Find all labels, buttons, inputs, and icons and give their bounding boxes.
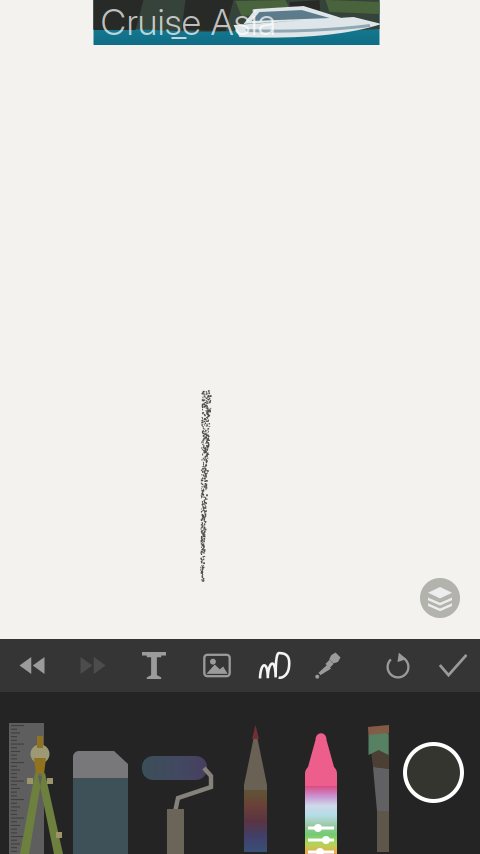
button[interactable]: Cruise Asia advertisement bbox=[97, 0, 383, 45]
button[interactable]: Rotate canvas bbox=[370, 639, 426, 692]
button[interactable]: Paintbrush bbox=[366, 725, 389, 852]
button[interactable]: Layers bbox=[420, 578, 460, 618]
button[interactable]: Ruler and compass bbox=[9, 723, 69, 854]
button[interactable]: Redo bbox=[64, 639, 122, 692]
button[interactable]: Paint roller bbox=[142, 756, 214, 854]
button[interactable]: Add photo bbox=[186, 639, 248, 692]
button[interactable]: Draw bbox=[248, 639, 302, 692]
button[interactable]: Done bbox=[426, 639, 480, 692]
button[interactable]: Eraser bbox=[73, 751, 128, 854]
staticText: Cruise Asia bbox=[100, 0, 276, 44]
button[interactable]: Undo bbox=[0, 639, 64, 692]
button[interactable]: Add text bbox=[122, 639, 186, 692]
button[interactable]: Current colour bbox=[405, 744, 462, 801]
button[interactable]: Crayon, selected bbox=[305, 734, 337, 854]
button[interactable]: Pick colour bbox=[302, 639, 354, 692]
button[interactable]: Coloured pencil bbox=[244, 725, 267, 852]
